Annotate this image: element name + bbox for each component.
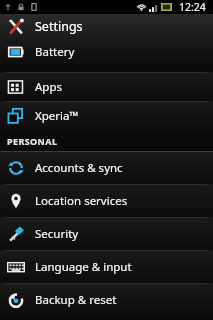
staticText: Apps bbox=[35, 79, 63, 95]
staticText: Security bbox=[35, 226, 79, 242]
staticText: 12:24 bbox=[179, 0, 206, 14]
staticText: Accounts & sync bbox=[35, 160, 123, 176]
staticText: Language & input bbox=[35, 259, 132, 275]
button[interactable]: Location services bbox=[0, 185, 213, 217]
staticText: Backup & reset bbox=[35, 292, 117, 308]
button[interactable]: Language & input bbox=[0, 251, 213, 283]
button[interactable]: Security bbox=[0, 218, 213, 250]
staticText: PERSONAL bbox=[7, 135, 58, 147]
button[interactable]: Battery bbox=[0, 39, 213, 65]
staticText: Battery bbox=[35, 44, 75, 60]
button[interactable]: Settings bbox=[0, 14, 213, 39]
button[interactable]: Accounts & sync bbox=[0, 152, 213, 184]
staticText: Settings bbox=[35, 18, 83, 35]
button[interactable]: Apps bbox=[0, 73, 213, 101]
button[interactable]: Backup & reset bbox=[0, 284, 213, 316]
staticText: Xperia™ bbox=[35, 108, 79, 124]
button[interactable]: Xperia™ bbox=[0, 102, 213, 130]
staticText: Location services bbox=[35, 193, 128, 209]
